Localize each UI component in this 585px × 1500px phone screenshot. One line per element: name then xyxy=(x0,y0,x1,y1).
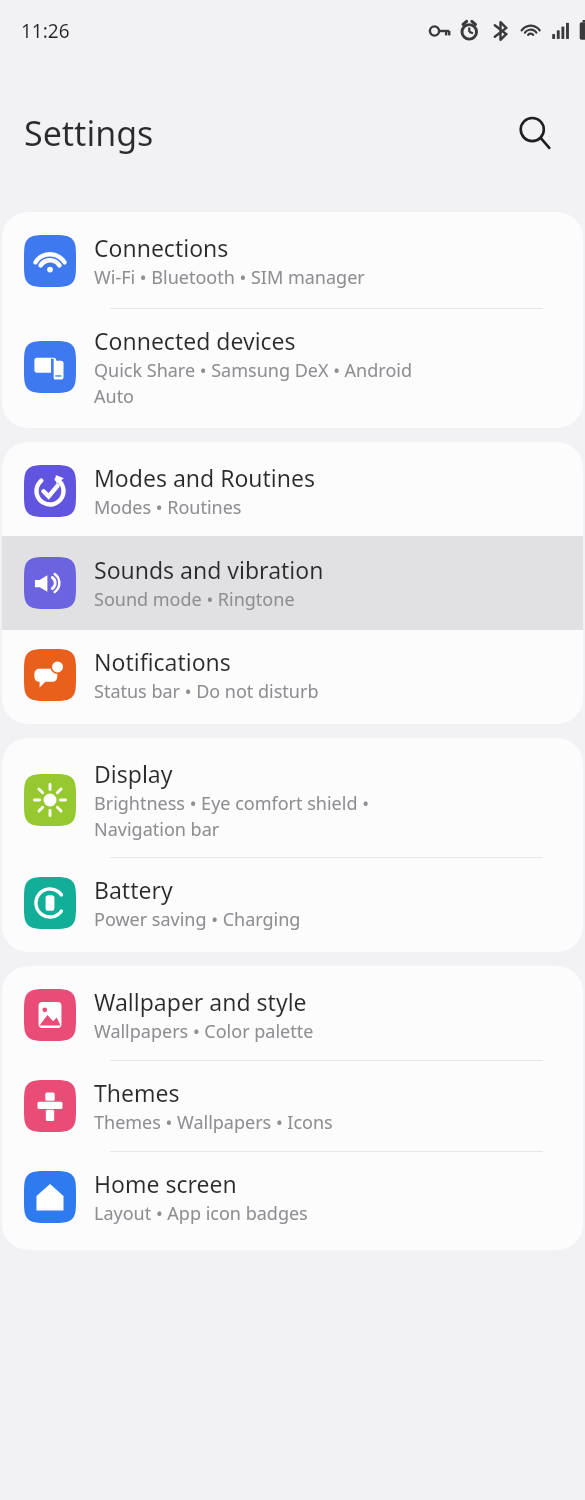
button[interactable]: Connected devices xyxy=(2,309,583,428)
button[interactable]: Sounds and vibration xyxy=(2,536,583,630)
button[interactable]: Connections xyxy=(2,212,583,308)
button[interactable]: Notifications xyxy=(2,630,583,724)
staticText: Home screen xyxy=(94,1168,237,1199)
staticText: Wallpaper and style xyxy=(94,986,307,1017)
button[interactable]: Modes and Routines xyxy=(2,442,583,536)
button[interactable]: Search xyxy=(509,107,561,159)
staticText: Wi-Fi • Bluetooth • SIM manager xyxy=(94,265,365,290)
staticText: Brightness • Eye comfort shield • Naviga… xyxy=(94,791,369,841)
staticText: Modes and Routines xyxy=(94,462,316,493)
staticText: Modes • Routines xyxy=(94,495,242,520)
staticText: Sounds and vibration xyxy=(94,554,324,585)
staticText: Display xyxy=(94,758,173,789)
button[interactable]: Themes xyxy=(2,1061,583,1151)
button[interactable]: Battery xyxy=(2,858,583,952)
staticText: Notifications xyxy=(94,646,231,677)
staticText: Themes • Wallpapers • Icons xyxy=(94,1110,333,1135)
button[interactable]: Wallpaper and style xyxy=(2,966,583,1060)
staticText: Sound mode • Ringtone xyxy=(94,587,295,612)
staticText: Status bar • Do not disturb xyxy=(94,679,319,704)
button[interactable]: Home screen xyxy=(2,1152,583,1250)
staticText: Wallpapers • Color palette xyxy=(94,1019,314,1044)
staticText: 11:26 xyxy=(21,18,70,44)
staticText: Connected devices xyxy=(94,325,296,356)
staticText: Settings xyxy=(24,110,509,156)
staticText: Quick Share • Samsung DeX • Android Auto xyxy=(94,358,412,408)
staticText: Layout • App icon badges xyxy=(94,1201,308,1226)
button[interactable]: Display xyxy=(2,738,583,857)
staticText: Power saving • Charging xyxy=(94,907,301,932)
staticText: Connections xyxy=(94,232,229,263)
staticText: Battery xyxy=(94,874,173,905)
staticText: Themes xyxy=(94,1077,180,1108)
